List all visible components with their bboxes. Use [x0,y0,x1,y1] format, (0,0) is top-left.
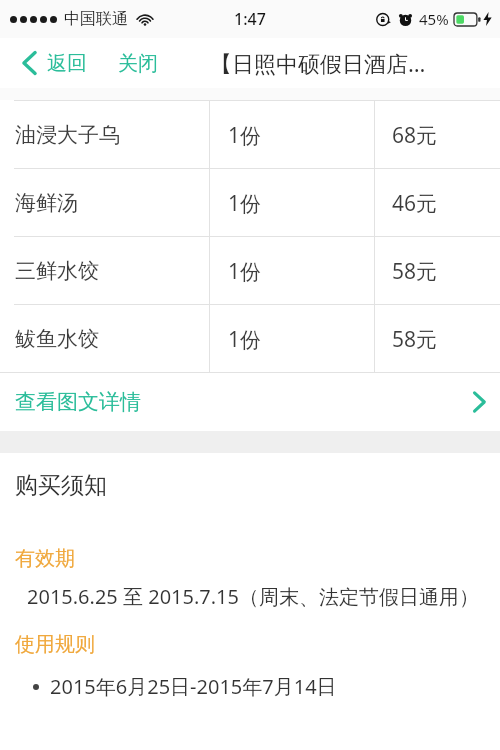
staticText: 查看图文详情 [15,389,141,415]
staticText: 三鲜水饺 [15,258,99,284]
button[interactable]: 鲅鱼水饺 [0,305,500,373]
staticText: 油浸大子乌 [15,122,120,148]
staticText: 1份 [228,189,262,218]
staticText: 1份 [228,257,262,286]
staticText: 返回 [47,51,87,76]
staticText: 45% [419,9,449,29]
staticText: 使用规则 [15,632,95,657]
staticText: 1份 [228,121,262,150]
staticText: 58元 [392,325,438,354]
staticText: 68元 [392,121,438,150]
staticText: 中国联通 [64,9,128,29]
button[interactable]: 三鲜水饺 [0,237,500,305]
button[interactable]: 油浸大子乌 [0,101,500,169]
staticText: 购买须知 [15,471,107,500]
staticText: 鲅鱼水饺 [15,326,99,352]
button[interactable]: 海鲜汤 [0,169,500,237]
button[interactable]: 返回 [22,50,87,76]
staticText: 【日照中硕假日酒店… [210,48,500,78]
staticText: 2015.6.25 至 2015.7.15（周末、法定节假日通用） [27,583,479,610]
staticText: 有效期 [15,546,75,571]
staticText: 关闭 [118,51,158,76]
button[interactable]: 查看图文详情 [0,373,500,431]
button[interactable]: 关闭 [118,51,158,76]
staticText: 海鲜汤 [15,190,78,216]
staticText: 1份 [228,325,262,354]
staticText: 58元 [392,257,438,286]
staticText: 46元 [392,189,438,218]
staticText: 1:47 [234,8,266,30]
staticText: 2015年6月25日-2015年7月14日 [50,673,337,700]
